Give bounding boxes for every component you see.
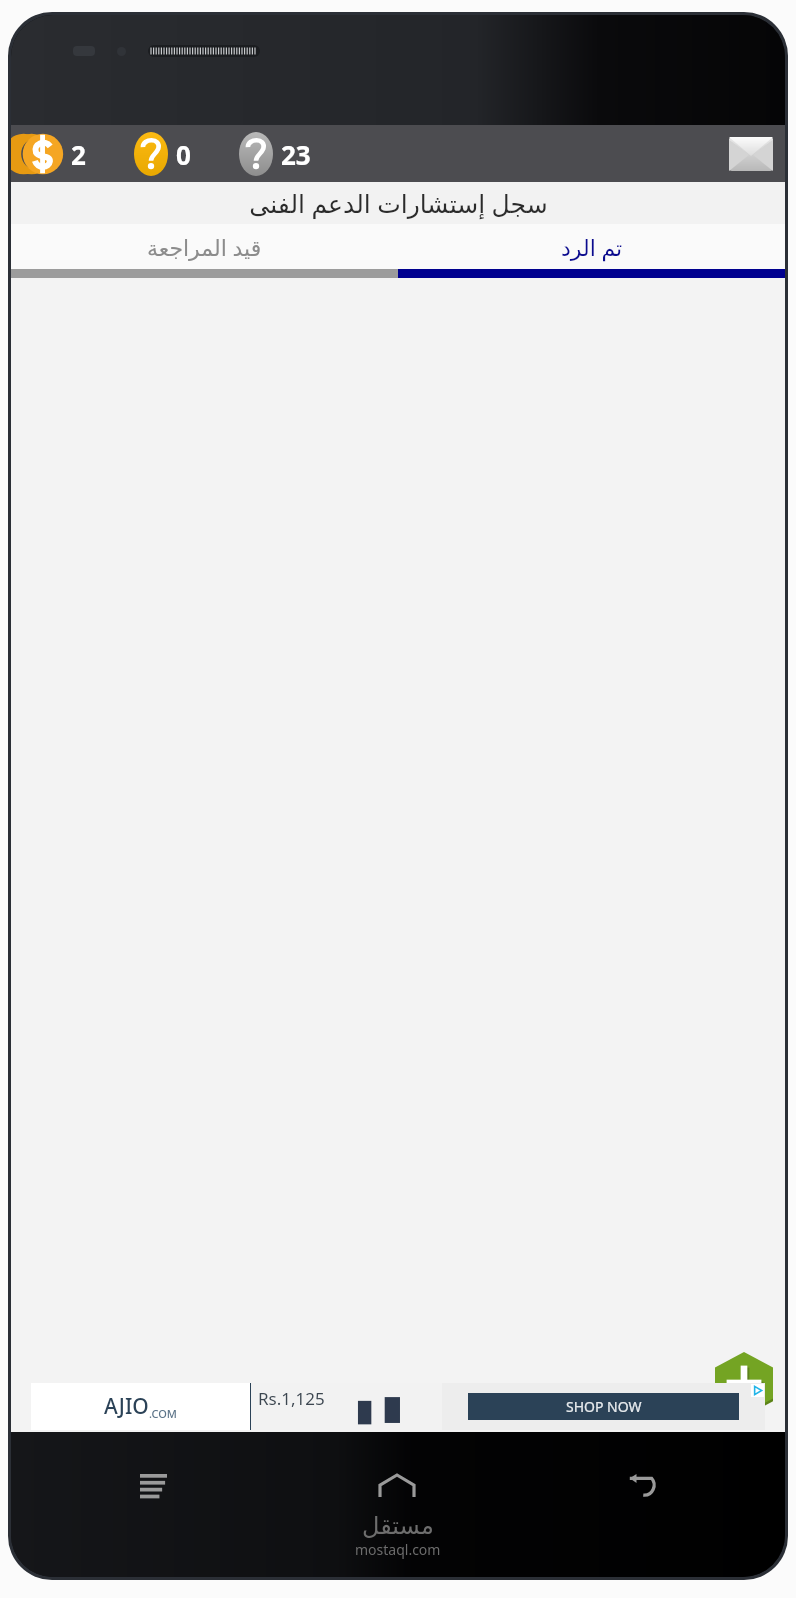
- staticText: SHOP NOW: [566, 1397, 642, 1416]
- button[interactable]: قيد المراجعة: [11, 224, 398, 269]
- button[interactable]: Back: [615, 1462, 667, 1510]
- staticText: mostaql.com: [355, 1540, 441, 1559]
- button[interactable]: تم الرد: [398, 224, 785, 269]
- staticText: مستقل: [362, 1512, 434, 1540]
- staticText: تم الرد: [561, 232, 623, 262]
- button[interactable]: Home: [368, 1463, 426, 1509]
- button[interactable]: Answered questions 23: [235, 132, 315, 176]
- staticText: .COM: [149, 1406, 177, 1421]
- staticText: قيد المراجعة: [147, 232, 262, 262]
- staticText: 0: [176, 137, 191, 172]
- button[interactable]: Open questions 0: [130, 132, 195, 176]
- button[interactable]: Recent apps: [128, 1462, 179, 1510]
- button[interactable]: Advertisement AJIO.com shop now: [31, 1383, 765, 1430]
- button[interactable]: Coins balance 2: [15, 131, 90, 177]
- staticText: Rs.1,125: [258, 1387, 325, 1410]
- button[interactable]: Add new consultation: [715, 1352, 773, 1414]
- staticText: سجل إستشارات الدعم الفنى: [249, 186, 548, 220]
- staticText: AJIO: [104, 1392, 149, 1421]
- staticText: 23: [281, 137, 311, 172]
- staticText: 2: [71, 137, 86, 172]
- button[interactable]: Messages: [723, 137, 779, 171]
